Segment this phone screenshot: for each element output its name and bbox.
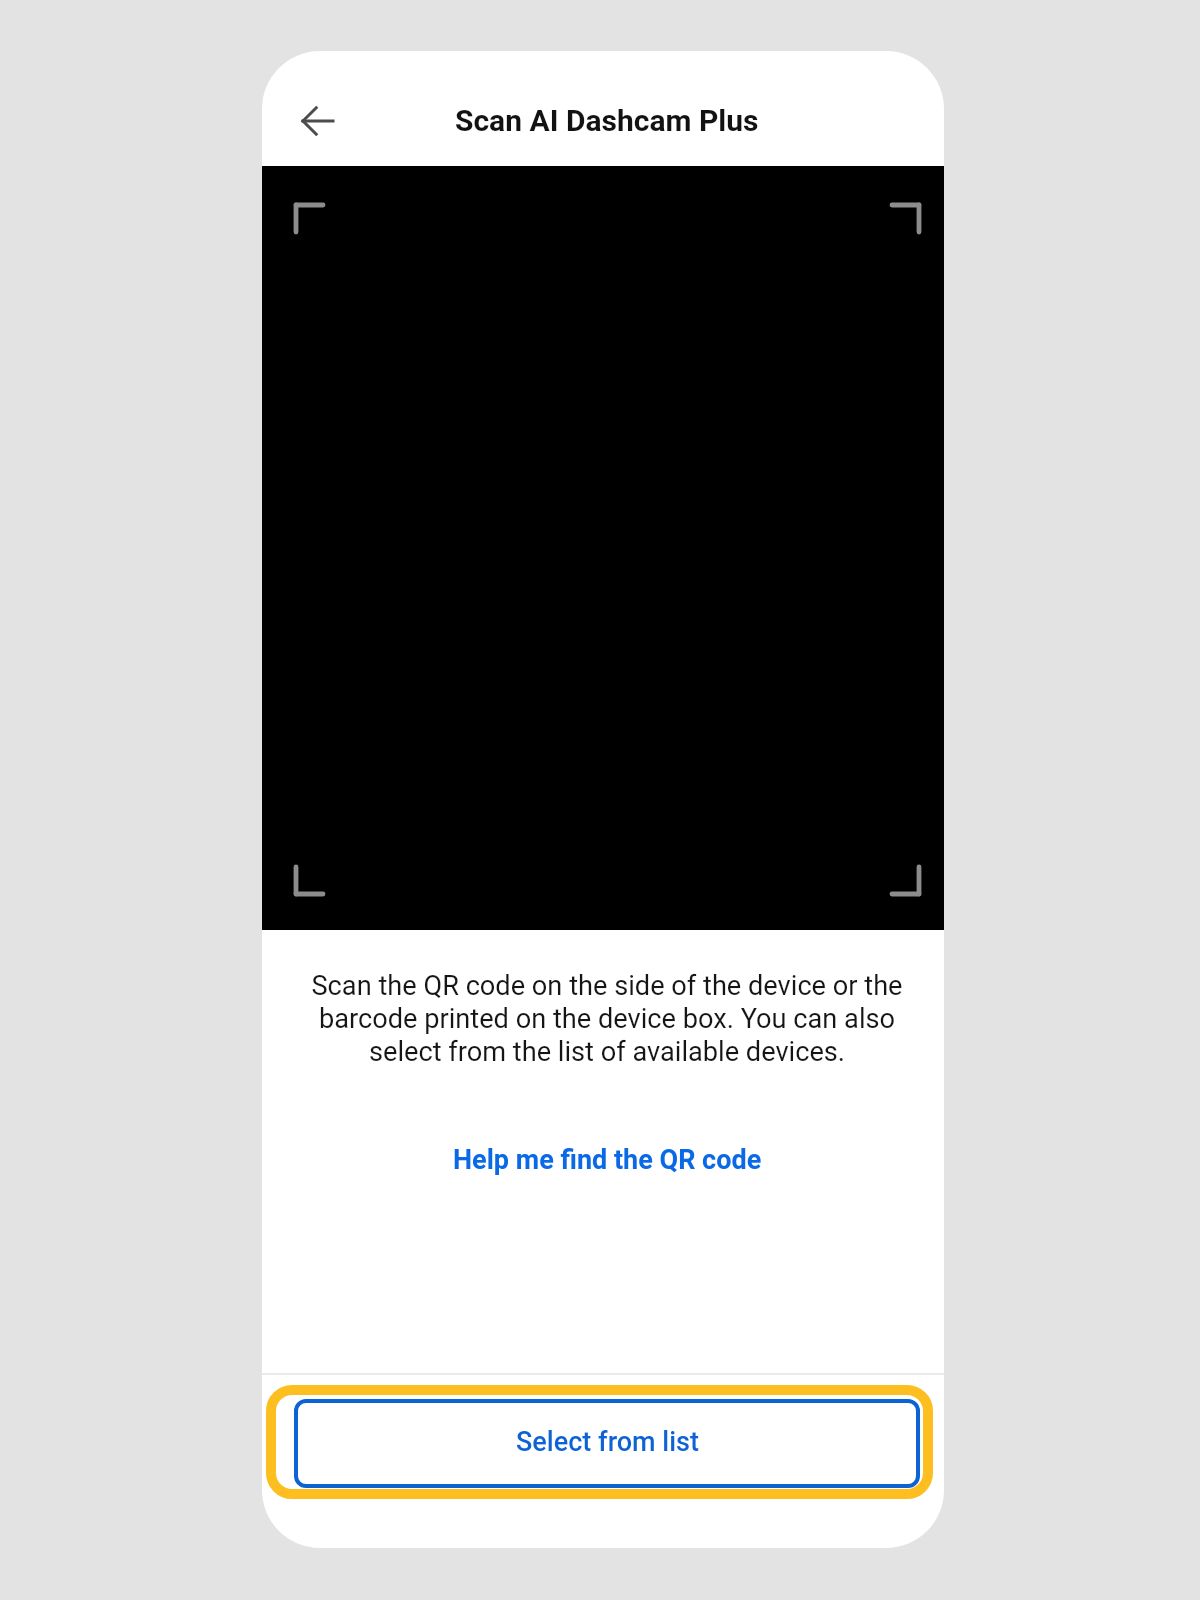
other: Camera viewfinder — [262, 166, 944, 930]
button[interactable]: Back — [287, 99, 349, 143]
staticText: Scan AI Dashcam Plus — [455, 103, 759, 138]
staticText: Scan the QR code on the side of the devi… — [290, 970, 924, 1068]
button[interactable]: Select from list — [266, 1385, 933, 1499]
button[interactable]: Help me find the QR code — [437, 1134, 778, 1186]
staticText: Select from list — [516, 1426, 700, 1458]
staticText: Help me find the QR code — [453, 1144, 762, 1176]
